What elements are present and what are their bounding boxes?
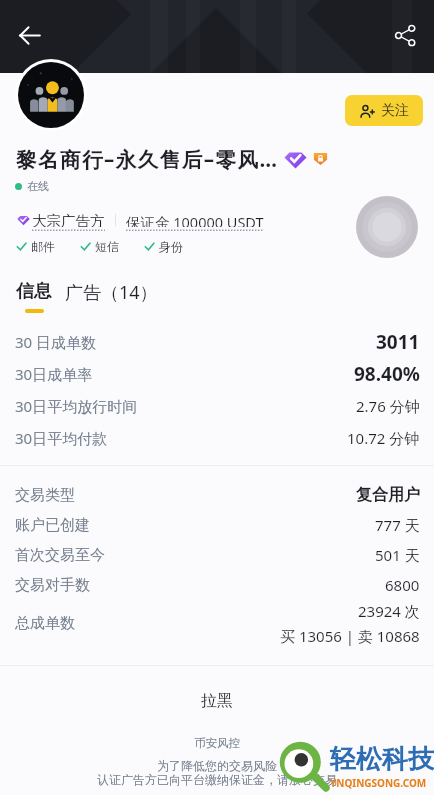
staticText: 2.76 分钟 bbox=[356, 396, 420, 416]
staticText: 拉黑 bbox=[201, 691, 233, 711]
staticText: 501 天 bbox=[375, 545, 420, 565]
staticText: 6800 bbox=[385, 575, 420, 595]
button[interactable]: 拉黑 bbox=[0, 666, 434, 736]
staticText: 短信 bbox=[95, 239, 119, 253]
button[interactable]: Back bbox=[7, 13, 51, 57]
staticText: 交易对手数 bbox=[15, 576, 90, 595]
staticText: 币安风控 bbox=[194, 736, 240, 750]
staticText: 总成单数 bbox=[15, 614, 75, 633]
staticText: 30日平均放行时间 bbox=[15, 396, 138, 416]
staticText: 信息 bbox=[16, 280, 52, 303]
staticText: 98.40% bbox=[354, 361, 420, 387]
staticText: 广告（14） bbox=[65, 280, 158, 305]
staticText: 交易类型 bbox=[15, 486, 75, 505]
button[interactable]: 广告（14） bbox=[65, 280, 158, 305]
staticText: 大宗广告方 bbox=[32, 212, 105, 227]
button[interactable]: 信息 bbox=[16, 280, 52, 303]
staticText: 邮件 bbox=[31, 239, 55, 253]
staticText: 30日成单率 bbox=[15, 364, 93, 384]
staticText: YNQINGSONG.COM bbox=[330, 776, 427, 790]
staticText: 黎名商行–永久售后–零风… bbox=[16, 145, 279, 171]
staticText: 在线 bbox=[27, 179, 49, 193]
staticText: 30日平均付款 bbox=[15, 428, 108, 448]
button[interactable]: 关注 bbox=[345, 95, 423, 126]
staticText: 买 13056 | 卖 10868 bbox=[280, 626, 420, 646]
staticText: 轻松科技 bbox=[330, 743, 434, 776]
staticText: 身份 bbox=[159, 239, 183, 253]
staticText: 复合用户 bbox=[356, 485, 420, 505]
staticText: 保证金 100000 USDT bbox=[126, 212, 264, 227]
staticText: 关注 bbox=[381, 102, 409, 120]
staticText: 23924 次 bbox=[358, 601, 420, 621]
staticText: 30 日成单数 bbox=[15, 332, 97, 352]
staticText: 为了降低您的交易风险 认证广告方已向平台缴纳保证金，请放心交易 bbox=[97, 758, 337, 788]
staticText: 首次交易至今 bbox=[15, 546, 105, 565]
staticText: 777 天 bbox=[375, 515, 420, 535]
staticText: 3011 bbox=[376, 329, 420, 355]
button[interactable]: Share bbox=[383, 13, 427, 57]
staticText: 10.72 分钟 bbox=[347, 428, 420, 448]
staticText: 账户已创建 bbox=[15, 516, 90, 535]
